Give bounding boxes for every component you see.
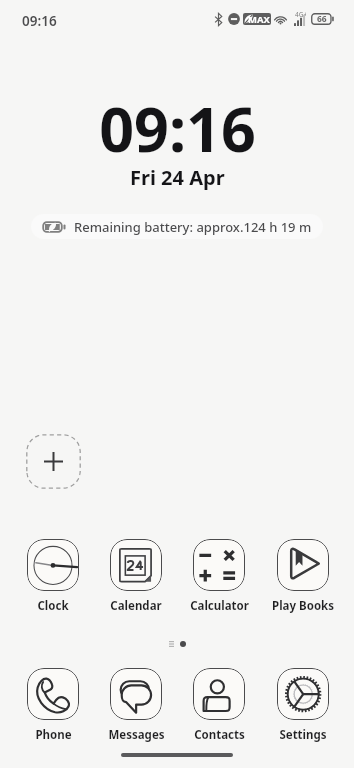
staticText: 09:16 xyxy=(99,87,256,170)
button[interactable]: Settings xyxy=(265,668,341,743)
button[interactable]: Clock xyxy=(15,539,91,614)
staticText: Remaining battery: approx.124 h 19 m xyxy=(74,218,312,236)
staticText: Play Books xyxy=(272,598,334,614)
button[interactable]: Calendar xyxy=(98,539,174,614)
button[interactable]: Calculator xyxy=(181,539,257,614)
staticText: 66 xyxy=(317,13,327,25)
staticText: Messages xyxy=(108,727,165,743)
staticText: Calendar xyxy=(110,598,162,614)
staticText: 09:16 xyxy=(22,12,57,30)
staticText: Contacts xyxy=(194,727,245,743)
button[interactable]: Play Books xyxy=(265,539,341,614)
staticText: Settings xyxy=(279,727,327,743)
staticText: Fri 24 Apr xyxy=(130,164,225,191)
button[interactable]: Messages xyxy=(98,668,174,743)
button[interactable]: Remaining battery: approx.124 h 19 m xyxy=(31,214,323,239)
button[interactable]: Phone xyxy=(15,668,91,743)
staticText: 4G+ xyxy=(295,10,306,19)
staticText: Calculator xyxy=(190,598,249,614)
staticText: Phone xyxy=(35,727,72,743)
button[interactable]: Contacts xyxy=(181,668,257,743)
staticText: Clock xyxy=(37,598,69,614)
button[interactable]: Add widget xyxy=(26,434,81,489)
staticText: MAX xyxy=(248,13,270,25)
